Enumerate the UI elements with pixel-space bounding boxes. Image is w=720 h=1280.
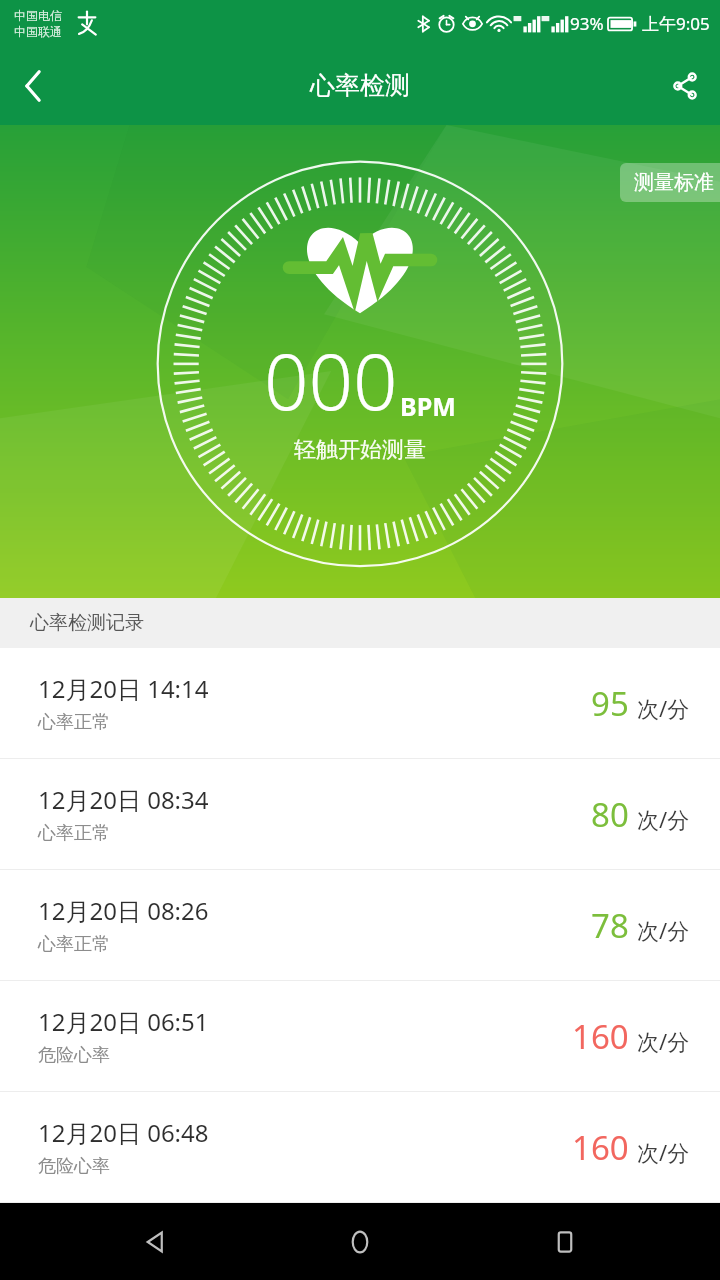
button[interactable]: 12月20日 08:26 — [0, 870, 720, 980]
staticText: 次/分 — [637, 693, 690, 723]
staticText: 12月20日 06:48 — [38, 1116, 209, 1149]
button[interactable]: Share — [650, 51, 720, 121]
staticText: 12月20日 06:51 — [38, 1005, 209, 1038]
staticText: 12月20日 14:14 — [38, 672, 209, 705]
staticText: 95 — [591, 681, 629, 726]
staticText: 心率正常 — [38, 822, 110, 845]
staticText: 000 — [264, 327, 398, 433]
staticText: BPM — [400, 389, 456, 423]
staticText: 中国联通 — [14, 24, 62, 39]
staticText: 160 — [572, 1125, 629, 1170]
staticText: 危险心率 — [38, 1155, 110, 1178]
staticText: 次/分 — [637, 1026, 690, 1056]
button[interactable]: 测量标准 — [620, 163, 720, 202]
button[interactable]: 12月20日 14:14 — [0, 648, 720, 758]
button[interactable]: 12月20日 06:51 — [0, 981, 720, 1091]
button[interactable]: Back — [0, 53, 66, 119]
staticText: 12月20日 08:26 — [38, 894, 209, 927]
staticText: 轻触开始测量 — [294, 436, 426, 464]
button[interactable]: 12月20日 06:48 — [0, 1092, 720, 1202]
button[interactable]: 12月20日 08:34 — [0, 759, 720, 869]
staticText: 次/分 — [637, 1137, 690, 1167]
staticText: 12月20日 08:34 — [38, 783, 209, 816]
staticText: 93% — [570, 12, 604, 35]
staticText: 心率检测 — [310, 70, 410, 101]
staticText: 78 — [591, 903, 629, 948]
staticText: 心率正常 — [38, 711, 110, 734]
staticText: 心率正常 — [38, 933, 110, 956]
staticText: 160 — [572, 1014, 629, 1059]
staticText: 中国电信 — [14, 8, 62, 23]
button[interactable]: Home — [310, 1203, 410, 1280]
staticText: 测量标准 — [634, 170, 714, 195]
staticText: 心率检测记录 — [30, 611, 144, 635]
staticText: 危险心率 — [38, 1044, 110, 1067]
staticText: 次/分 — [637, 915, 690, 945]
button[interactable]: Back — [105, 1203, 205, 1280]
staticText: 次/分 — [637, 804, 690, 834]
staticText: 80 — [591, 792, 629, 837]
button[interactable]: Recent apps — [515, 1203, 615, 1280]
staticText: 上午9:05 — [642, 12, 710, 35]
